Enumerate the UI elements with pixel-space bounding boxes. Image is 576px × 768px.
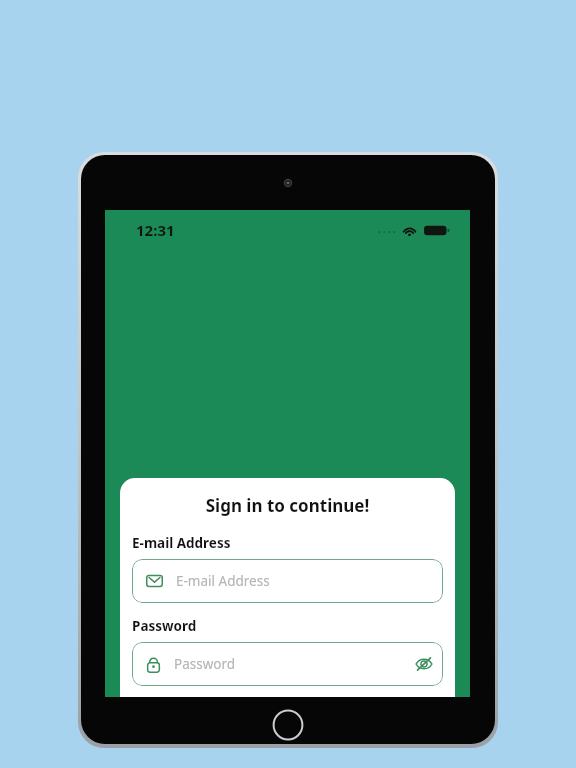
staticText: E-mail Address [132, 534, 231, 552]
button[interactable]: Toggle password visibility [409, 649, 439, 679]
staticText: Password [174, 655, 409, 673]
button[interactable]: Password [132, 642, 443, 686]
staticText: Password [132, 617, 197, 635]
button[interactable]: E-mail Address [132, 559, 443, 603]
staticText: 12:31 [136, 220, 175, 240]
staticText: Sign in to continue! [120, 494, 455, 517]
staticText: E-mail Address [176, 572, 443, 590]
